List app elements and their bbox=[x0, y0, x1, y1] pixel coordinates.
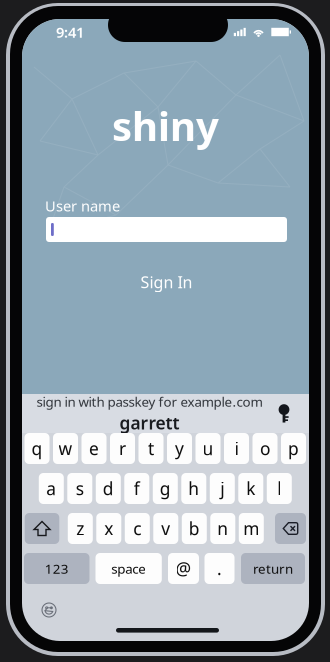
staticText: b bbox=[189, 517, 200, 540]
staticText: s bbox=[76, 477, 84, 500]
staticText: l bbox=[277, 477, 281, 500]
button[interactable]: z bbox=[68, 513, 93, 544]
staticText: f bbox=[134, 477, 140, 500]
staticText: sign in with passkey for example.com bbox=[36, 393, 262, 410]
staticText: u bbox=[202, 437, 213, 460]
button[interactable]: space bbox=[95, 553, 162, 584]
button[interactable]: n bbox=[210, 513, 235, 544]
button[interactable]: Emoji bbox=[36, 597, 62, 623]
button[interactable]: x bbox=[96, 513, 121, 544]
staticText: o bbox=[260, 437, 270, 460]
staticText: v bbox=[161, 517, 170, 540]
staticText: k bbox=[246, 477, 255, 500]
button[interactable]: m bbox=[239, 513, 264, 544]
staticText: c bbox=[133, 517, 141, 540]
button[interactable]: t bbox=[138, 433, 163, 464]
staticText: h bbox=[188, 477, 199, 500]
button[interactable]: Shift bbox=[25, 513, 59, 544]
button[interactable]: o bbox=[252, 433, 277, 464]
staticText: d bbox=[103, 477, 114, 500]
staticText: Sign In bbox=[140, 271, 192, 293]
button[interactable]: g bbox=[153, 473, 178, 504]
button[interactable]: return bbox=[241, 553, 305, 584]
staticText: User name bbox=[45, 196, 120, 215]
button[interactable]: sign in with passkey for example.com bbox=[22, 394, 309, 433]
staticText: i bbox=[234, 437, 238, 460]
button[interactable]: l bbox=[267, 473, 292, 504]
staticText: e bbox=[89, 437, 99, 460]
button[interactable]: i bbox=[224, 433, 249, 464]
button[interactable]: p bbox=[281, 433, 306, 464]
staticText: g bbox=[160, 477, 171, 500]
staticText: a bbox=[46, 477, 56, 500]
staticText: garrett bbox=[119, 411, 179, 434]
button[interactable]: s bbox=[67, 473, 92, 504]
staticText: z bbox=[76, 517, 84, 540]
staticText: space bbox=[111, 560, 146, 577]
button[interactable]: v bbox=[153, 513, 178, 544]
button[interactable]: @ bbox=[168, 553, 199, 584]
button[interactable]: c bbox=[125, 513, 150, 544]
button[interactable]: . bbox=[204, 553, 234, 584]
staticText: @ bbox=[175, 557, 191, 580]
staticText: y bbox=[175, 437, 184, 460]
staticText: 9:41 bbox=[56, 22, 84, 42]
button[interactable]: y bbox=[167, 433, 192, 464]
button[interactable]: h bbox=[181, 473, 206, 504]
staticText: m bbox=[243, 517, 259, 540]
staticText: j bbox=[220, 477, 224, 500]
staticText: t bbox=[148, 437, 154, 460]
button[interactable]: b bbox=[182, 513, 207, 544]
button[interactable]: u bbox=[195, 433, 220, 464]
button[interactable]: r bbox=[110, 433, 135, 464]
button[interactable]: a bbox=[39, 473, 64, 504]
staticText: return bbox=[253, 560, 293, 577]
staticText: p bbox=[288, 437, 299, 460]
button[interactable]: Sign In bbox=[118, 270, 214, 294]
button[interactable]: 123 bbox=[24, 553, 89, 584]
staticText: n bbox=[217, 517, 228, 540]
staticText: 123 bbox=[45, 560, 69, 577]
button[interactable]: e bbox=[81, 433, 106, 464]
button[interactable]: k bbox=[238, 473, 263, 504]
button[interactable]: f bbox=[124, 473, 149, 504]
button[interactable]: q bbox=[24, 433, 49, 464]
staticText: . bbox=[217, 557, 222, 580]
button[interactable]: Delete bbox=[275, 513, 306, 544]
staticText: q bbox=[31, 437, 42, 460]
staticText: r bbox=[119, 437, 126, 460]
button[interactable]: w bbox=[53, 433, 78, 464]
button[interactable]: d bbox=[96, 473, 121, 504]
button[interactable]: j bbox=[210, 473, 235, 504]
staticText: w bbox=[58, 437, 72, 460]
staticText: shiny bbox=[112, 99, 219, 152]
staticText: x bbox=[104, 517, 113, 540]
